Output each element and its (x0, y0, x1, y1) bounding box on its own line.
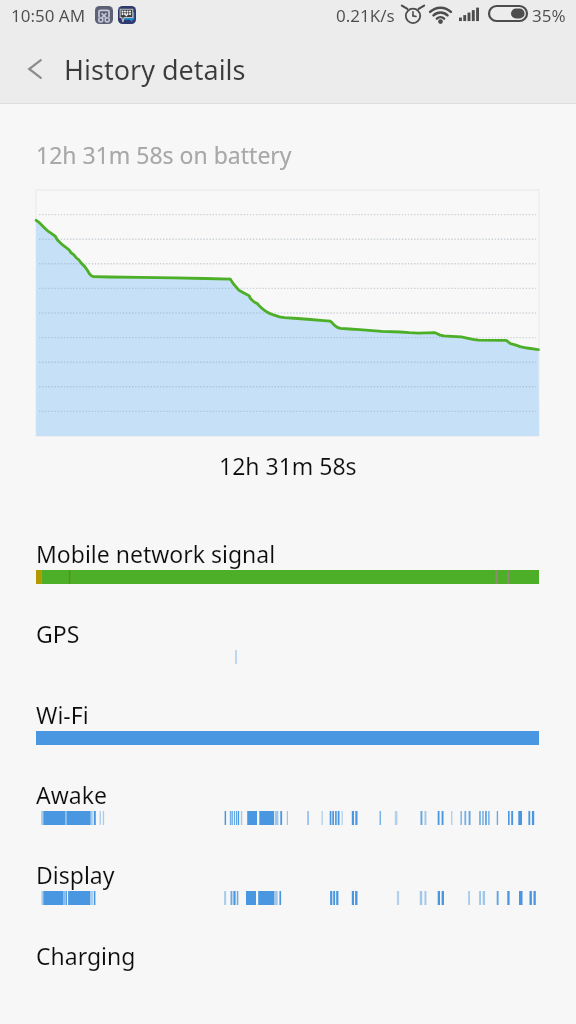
staticText: 0.21K/s (336, 4, 395, 27)
staticText: 35% (532, 4, 566, 27)
staticText: 12h 31m 58s (219, 450, 357, 481)
button[interactable]: Charging (0, 940, 576, 1012)
staticText: GPS (36, 618, 80, 649)
staticText: Awake (36, 779, 107, 810)
button[interactable]: Back (7, 34, 63, 104)
staticText: Mobile network signal (36, 538, 276, 569)
button[interactable]: Display (0, 859, 576, 931)
staticText: Charging (36, 940, 136, 971)
button[interactable]: Wi-Fi (0, 699, 576, 771)
button[interactable]: Mobile network signal (0, 538, 576, 610)
staticText: Wi-Fi (36, 699, 89, 730)
staticText: Display (36, 859, 115, 890)
staticText: 10:50 AM (11, 4, 86, 27)
button[interactable]: Awake (0, 779, 576, 851)
staticText: History details (64, 51, 246, 88)
button[interactable]: GPS (0, 618, 576, 690)
staticText: 12h 31m 58s on battery (36, 139, 292, 170)
